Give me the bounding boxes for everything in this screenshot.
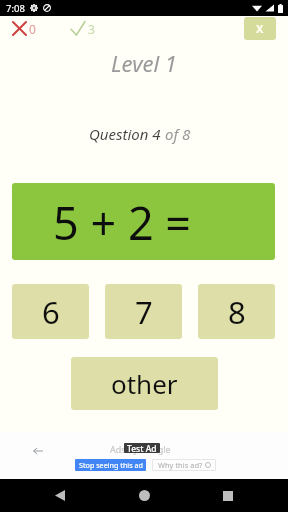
button[interactable]: Close bbox=[244, 17, 276, 40]
staticText: of 8 bbox=[165, 124, 191, 144]
staticText: Stop seeing this ad bbox=[79, 460, 143, 470]
button[interactable]: Back bbox=[33, 446, 43, 456]
staticText: Question 4 bbox=[89, 124, 165, 144]
staticText: X bbox=[256, 21, 264, 36]
button[interactable]: 5 + 2 = bbox=[12, 183, 275, 260]
staticText: other bbox=[111, 366, 178, 401]
button[interactable]: Stop seeing this ad bbox=[75, 459, 146, 471]
button[interactable]: Recent apps bbox=[204, 479, 252, 512]
staticText: 0 bbox=[29, 21, 36, 37]
button[interactable]: Why this ad? bbox=[152, 459, 216, 471]
staticText: 5 + 2 = bbox=[53, 192, 192, 253]
button[interactable]: 6 bbox=[12, 284, 89, 339]
button[interactable]: 7 bbox=[105, 284, 182, 339]
staticText: Test Ad bbox=[127, 443, 157, 453]
staticText: Ads by Google bbox=[110, 443, 171, 455]
staticText: Why this ad? bbox=[158, 460, 203, 470]
staticText: Level 1 bbox=[0, 48, 288, 78]
button[interactable]: Back bbox=[36, 479, 84, 512]
staticText: 7 bbox=[135, 291, 153, 333]
staticText: 6 bbox=[42, 291, 60, 333]
button[interactable]: 8 bbox=[198, 284, 275, 339]
staticText: 3 bbox=[88, 21, 95, 37]
staticText: 7:08 bbox=[6, 2, 25, 15]
staticText: 8 bbox=[228, 291, 246, 333]
button[interactable]: other bbox=[71, 357, 218, 410]
button[interactable]: Home bbox=[120, 479, 168, 512]
